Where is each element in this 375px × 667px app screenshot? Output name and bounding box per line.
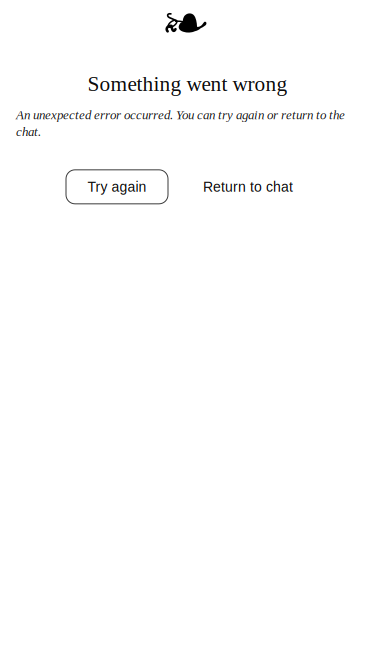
- button[interactable]: Try again: [66, 170, 168, 204]
- staticText: Something went wrong: [87, 72, 287, 96]
- staticText: An unexpected error occurred. You can tr…: [16, 108, 345, 139]
- button[interactable]: Return to chat: [168, 170, 307, 204]
- staticText: Try again: [87, 179, 146, 195]
- staticText: Return to chat: [203, 179, 293, 195]
